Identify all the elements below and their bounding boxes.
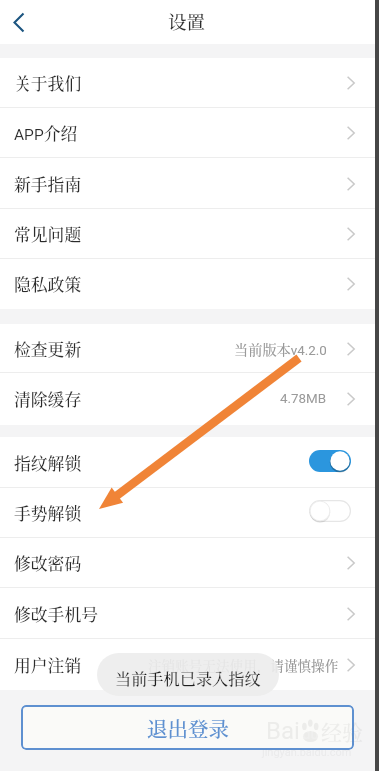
button[interactable]: 修改手机号 bbox=[0, 588, 375, 639]
staticText: du bbox=[302, 725, 319, 743]
button[interactable]: APP介绍 bbox=[0, 108, 375, 158]
staticText: 修改密码 bbox=[14, 551, 82, 575]
staticText: 新手指南 bbox=[14, 172, 82, 196]
staticText: 关于我们 bbox=[14, 71, 82, 95]
button[interactable]: 手势解锁 bbox=[0, 488, 375, 538]
button[interactable]: Back bbox=[2, 5, 36, 39]
button[interactable]: 检查更新 bbox=[0, 324, 375, 373]
staticText: 注销账号无法使用，请谨慎操作 bbox=[148, 655, 339, 675]
staticText: Bai bbox=[266, 717, 300, 745]
staticText: 4.78MB bbox=[280, 391, 327, 407]
button[interactable]: 清除缓存 bbox=[0, 373, 375, 425]
staticText: APP介绍 bbox=[14, 121, 78, 145]
staticText: 指纹解锁 bbox=[14, 451, 82, 475]
button[interactable]: 指纹解锁 bbox=[0, 437, 375, 488]
staticText: 修改手机号 bbox=[14, 602, 98, 626]
button[interactable]: 退出登录 bbox=[21, 705, 354, 750]
staticText: 当前版本v4.2.0 bbox=[234, 339, 327, 359]
staticText: 常见问题 bbox=[14, 222, 82, 246]
staticText: 检查更新 bbox=[14, 337, 82, 361]
staticText: 隐私政策 bbox=[14, 272, 82, 296]
staticText: 退出登录 bbox=[147, 713, 229, 742]
staticText: 经验 bbox=[321, 716, 363, 746]
button[interactable]: 常见问题 bbox=[0, 209, 375, 259]
button[interactable]: 关于我们 bbox=[0, 58, 375, 108]
staticText: 设置 bbox=[168, 8, 206, 35]
button[interactable]: Switch on bbox=[309, 450, 351, 472]
button[interactable]: 用户注销 bbox=[0, 639, 375, 690]
staticText: 清除缓存 bbox=[14, 387, 82, 411]
button[interactable]: Switch off bbox=[309, 500, 351, 522]
staticText: jingyan.baidu.com bbox=[262, 746, 352, 759]
staticText: 手势解锁 bbox=[14, 501, 82, 525]
button[interactable]: 隐私政策 bbox=[0, 259, 375, 309]
button[interactable]: 新手指南 bbox=[0, 158, 375, 209]
staticText: 用户注销 bbox=[14, 653, 82, 677]
button[interactable]: 修改密码 bbox=[0, 538, 375, 588]
staticText: 当前手机已录入指纹 bbox=[115, 666, 261, 689]
